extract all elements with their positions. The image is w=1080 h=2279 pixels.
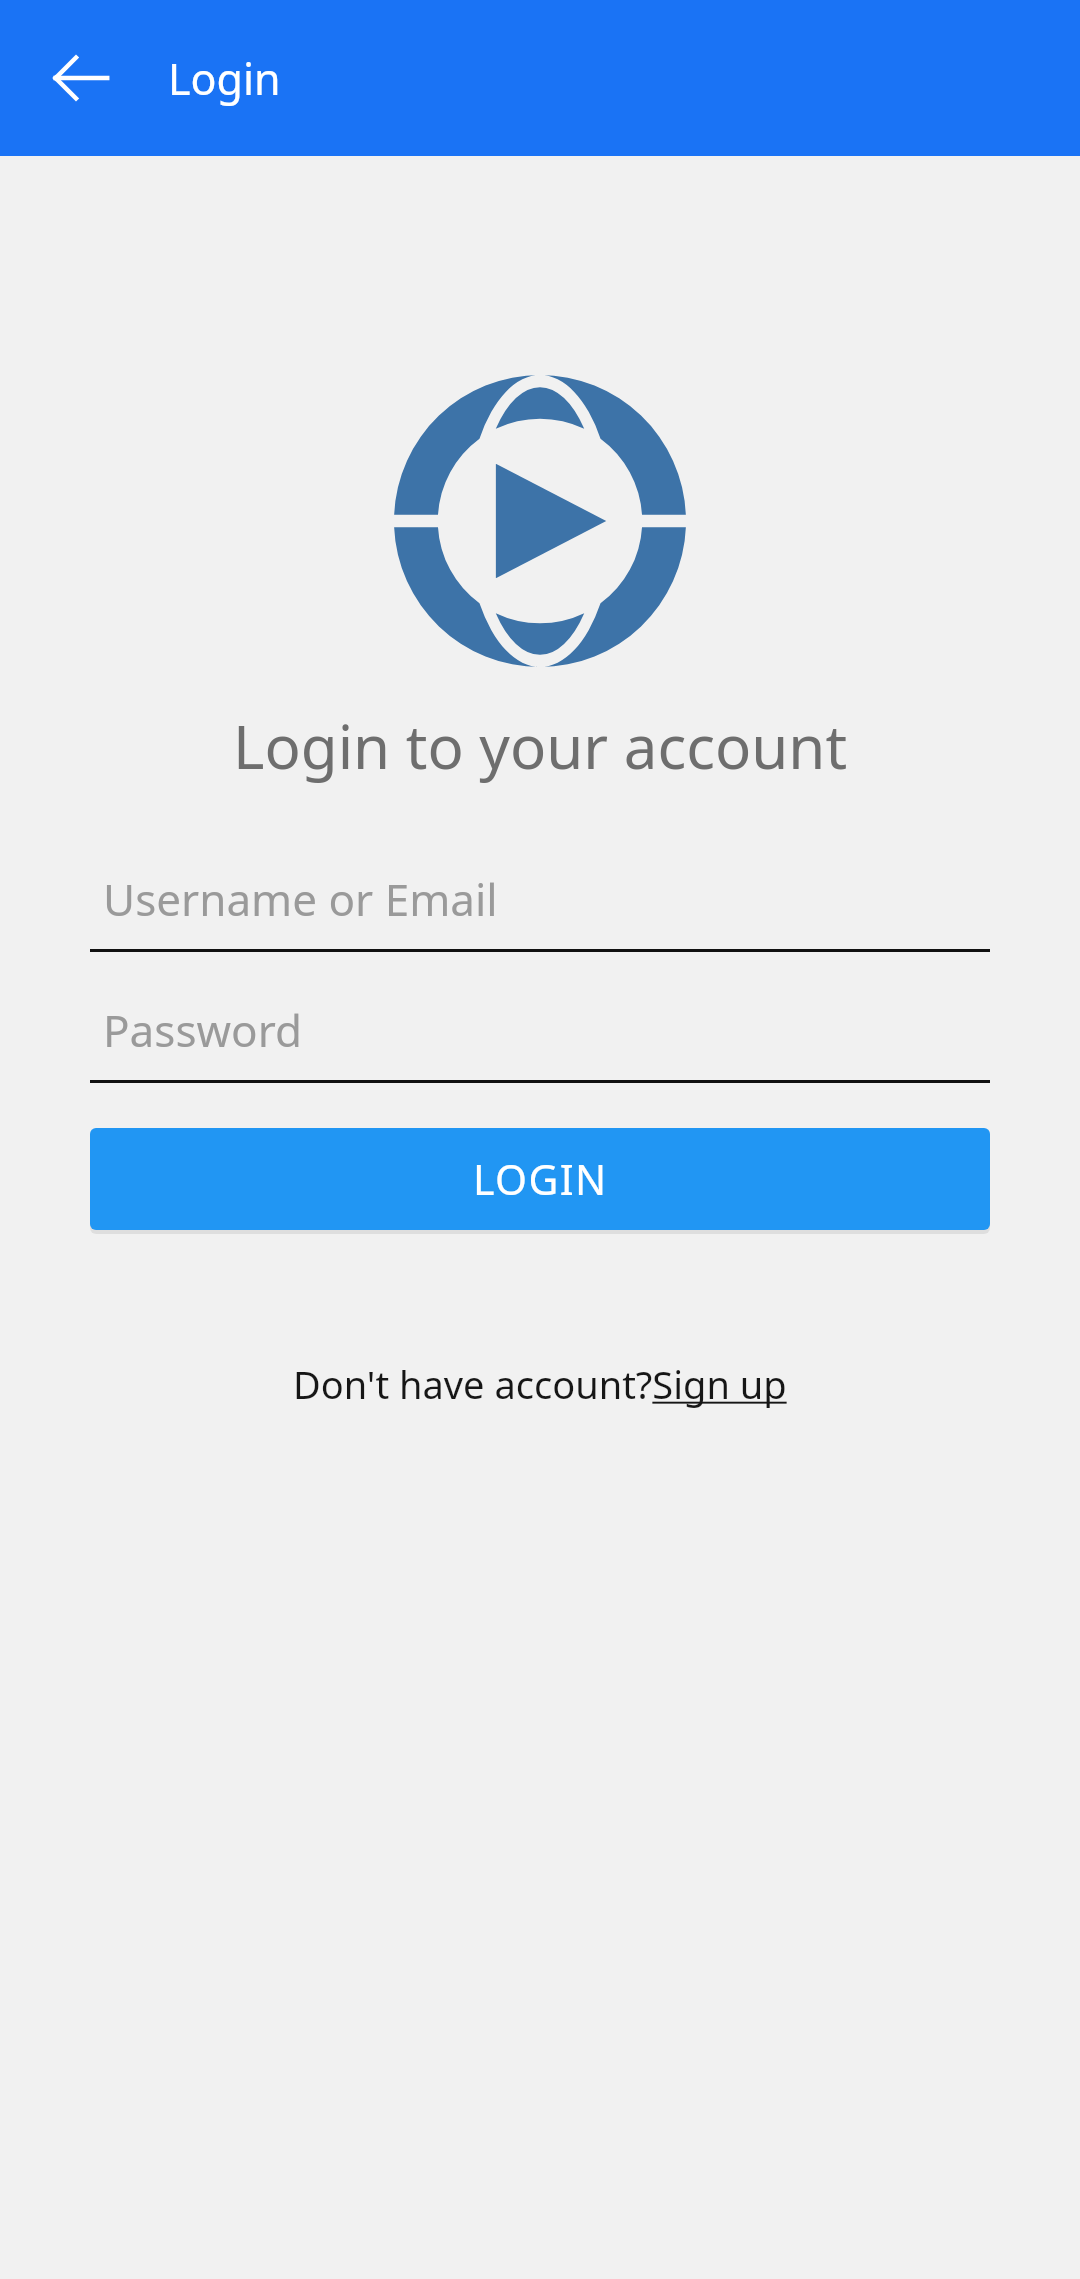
button[interactable]: Don't have account?Sign up [293, 1358, 787, 1410]
staticText: Don't have account?Sign up [293, 1358, 787, 1410]
button[interactable]: Back [34, 30, 130, 126]
staticText: Login to your account [233, 705, 848, 787]
button[interactable]: Username or Email [90, 849, 990, 952]
staticText: LOGIN [473, 1151, 608, 1207]
button[interactable]: LOGIN [90, 1128, 990, 1230]
staticText: Username or Email [103, 869, 498, 929]
staticText: Login [168, 49, 281, 108]
staticText: Password [103, 1000, 303, 1060]
button[interactable]: Password [90, 980, 990, 1083]
